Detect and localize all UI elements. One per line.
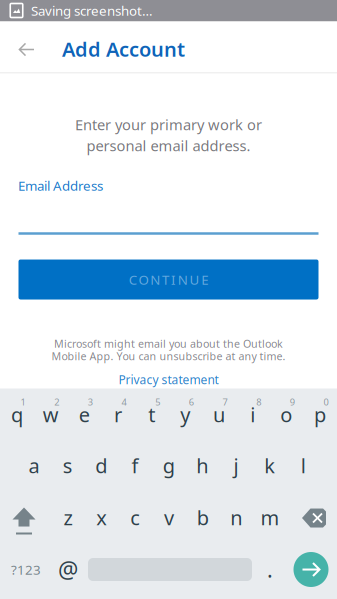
staticText: 4 — [121, 396, 126, 408]
button[interactable]: 2 — [34, 390, 67, 436]
staticText: Email Address — [18, 177, 103, 194]
button[interactable]: 9 — [270, 390, 303, 436]
button[interactable]: 8 — [236, 390, 269, 436]
button[interactable]: m — [253, 493, 286, 539]
button[interactable]: 5 — [135, 390, 168, 436]
staticText: 5 — [155, 396, 160, 408]
staticText: f — [131, 452, 138, 479]
staticText: d — [95, 452, 107, 479]
staticText: s — [63, 452, 73, 479]
staticText: y — [180, 401, 190, 428]
button[interactable]: v — [152, 493, 185, 539]
staticText: personal email address. — [86, 136, 250, 155]
button[interactable]: Backspace — [291, 495, 337, 541]
staticText: 6 — [189, 396, 194, 408]
staticText: u — [213, 401, 225, 428]
staticText: c — [130, 504, 140, 531]
staticText: @ — [58, 554, 78, 584]
button[interactable]: b — [186, 493, 219, 539]
button[interactable]: x — [85, 493, 118, 539]
button[interactable]: k — [253, 441, 286, 487]
button[interactable]: n — [220, 493, 253, 539]
button[interactable]: a — [17, 441, 50, 487]
button[interactable]: c — [119, 493, 152, 539]
staticText: p — [314, 401, 326, 428]
staticText: e — [79, 401, 90, 428]
staticText: k — [264, 452, 275, 479]
staticText: Add Account — [62, 36, 185, 62]
button[interactable]: CONTINUE — [18, 259, 318, 299]
staticText: Saving screenshot… — [31, 2, 153, 19]
staticText: l — [301, 452, 306, 479]
button[interactable]: 1 — [0, 390, 33, 436]
staticText: n — [230, 504, 242, 531]
staticText: 1 — [20, 396, 25, 408]
staticText: x — [96, 504, 107, 531]
button[interactable]: h — [186, 441, 219, 487]
button[interactable]: Back — [6, 21, 46, 72]
staticText: Mobile App. You can unsubscribe at any t… — [51, 349, 285, 363]
staticText: . — [267, 555, 273, 584]
staticText: b — [197, 504, 209, 531]
staticText: r — [114, 401, 122, 428]
button[interactable]: z — [51, 493, 84, 539]
staticText: w — [43, 401, 59, 428]
button[interactable]: . — [255, 547, 285, 591]
staticText: ?123 — [11, 561, 41, 578]
staticText: t — [148, 401, 155, 428]
staticText: h — [196, 452, 208, 479]
staticText: Enter your primary work or — [75, 115, 262, 134]
staticText: 9 — [290, 396, 295, 408]
button[interactable]: g — [152, 441, 185, 487]
button[interactable]: 4 — [101, 390, 134, 436]
button[interactable]: 6 — [169, 390, 202, 436]
button[interactable]: Go — [293, 552, 328, 587]
staticText: o — [280, 401, 292, 428]
button[interactable]: ?123 — [0, 547, 54, 591]
staticText: v — [164, 504, 174, 531]
button[interactable]: l — [287, 441, 320, 487]
staticText: CONTINUE — [129, 271, 208, 288]
button[interactable]: Shift — [2, 496, 48, 542]
button[interactable]: Privacy statement — [114, 367, 222, 391]
staticText: j — [233, 452, 238, 479]
staticText: z — [63, 504, 72, 531]
staticText: Microsoft might email you about the Outl… — [54, 336, 283, 351]
button[interactable]: s — [51, 441, 84, 487]
button[interactable]: 7 — [202, 390, 235, 436]
staticText: g — [163, 452, 175, 479]
button[interactable]: @ — [48, 547, 88, 591]
staticText: Privacy statement — [118, 371, 218, 387]
staticText: 0 — [323, 396, 328, 408]
staticText: a — [28, 452, 39, 479]
button[interactable]: 3 — [68, 390, 101, 436]
staticText: 8 — [256, 396, 261, 408]
staticText: 7 — [222, 396, 227, 408]
staticText: i — [250, 401, 255, 428]
button[interactable]: 0 — [303, 390, 336, 436]
button[interactable]: f — [118, 441, 151, 487]
staticText: 2 — [54, 396, 59, 408]
staticText: m — [260, 504, 279, 531]
button[interactable]: j — [219, 441, 252, 487]
staticText: 3 — [88, 396, 93, 408]
button[interactable]: d — [85, 441, 118, 487]
staticText: q — [11, 401, 23, 428]
